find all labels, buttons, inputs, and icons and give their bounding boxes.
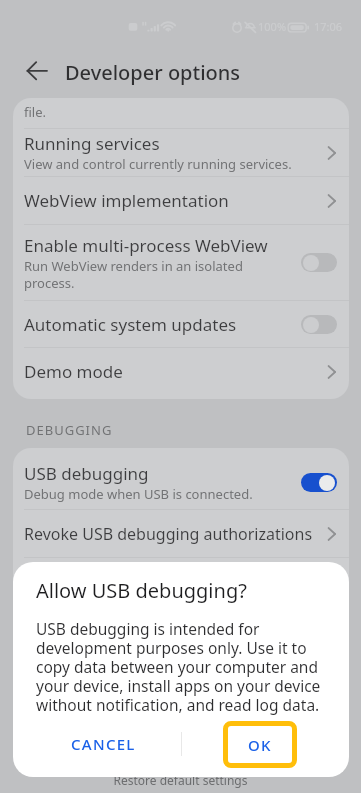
staticText: WebView implementation bbox=[24, 189, 229, 212]
staticText: Run WebView renders in an isolated proce… bbox=[24, 257, 295, 292]
button[interactable]: Back bbox=[23, 56, 51, 84]
button[interactable]: Revoke USB debugging authorizations bbox=[13, 510, 349, 557]
button[interactable]: Demo mode bbox=[13, 348, 349, 395]
button[interactable]: Automatic system updates bbox=[301, 315, 337, 334]
button[interactable]: USB debugging bbox=[301, 473, 337, 492]
button[interactable]: Select mock location app bbox=[13, 558, 349, 605]
staticText: Automatic system updates bbox=[24, 313, 237, 336]
button[interactable]: USB debugging bbox=[13, 455, 349, 509]
staticText: Allow USB debugging? bbox=[36, 577, 247, 604]
staticText: Developer options bbox=[65, 59, 241, 86]
staticText: Select mock location app bbox=[24, 570, 222, 593]
staticText: USB debugging bbox=[24, 462, 149, 485]
staticText: file. bbox=[24, 103, 46, 121]
button[interactable]: CANCEL bbox=[26, 721, 181, 767]
button[interactable]: Enable multi-process WebView bbox=[301, 253, 337, 272]
staticText: CANCEL bbox=[71, 734, 136, 754]
staticText: 17:06 bbox=[314, 19, 343, 34]
staticText: DEBUGGING bbox=[26, 421, 113, 439]
staticText: 100% bbox=[258, 19, 287, 34]
button[interactable]: OK bbox=[223, 721, 297, 768]
button[interactable]: Enable multi-process WebView bbox=[13, 225, 349, 300]
staticText: Revoke USB debugging authorizations bbox=[24, 523, 313, 545]
staticText: View and control currently running servi… bbox=[24, 155, 292, 173]
staticText: Running services bbox=[24, 132, 160, 155]
button[interactable]: Running services bbox=[13, 129, 349, 176]
button[interactable]: WebView implementation bbox=[13, 177, 349, 224]
staticText: Debug mode when USB is connected. bbox=[24, 485, 253, 503]
staticText: USB debugging is intended for developmen… bbox=[36, 618, 332, 715]
staticText: Enable multi-process WebView bbox=[24, 234, 268, 257]
staticText: Restore default settings bbox=[0, 772, 361, 788]
button[interactable]: Automatic system updates bbox=[13, 301, 349, 347]
staticText: OK bbox=[248, 735, 272, 755]
staticText: Demo mode bbox=[24, 360, 123, 383]
